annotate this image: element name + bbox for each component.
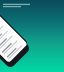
- other: App preview: [0, 0, 64, 72]
